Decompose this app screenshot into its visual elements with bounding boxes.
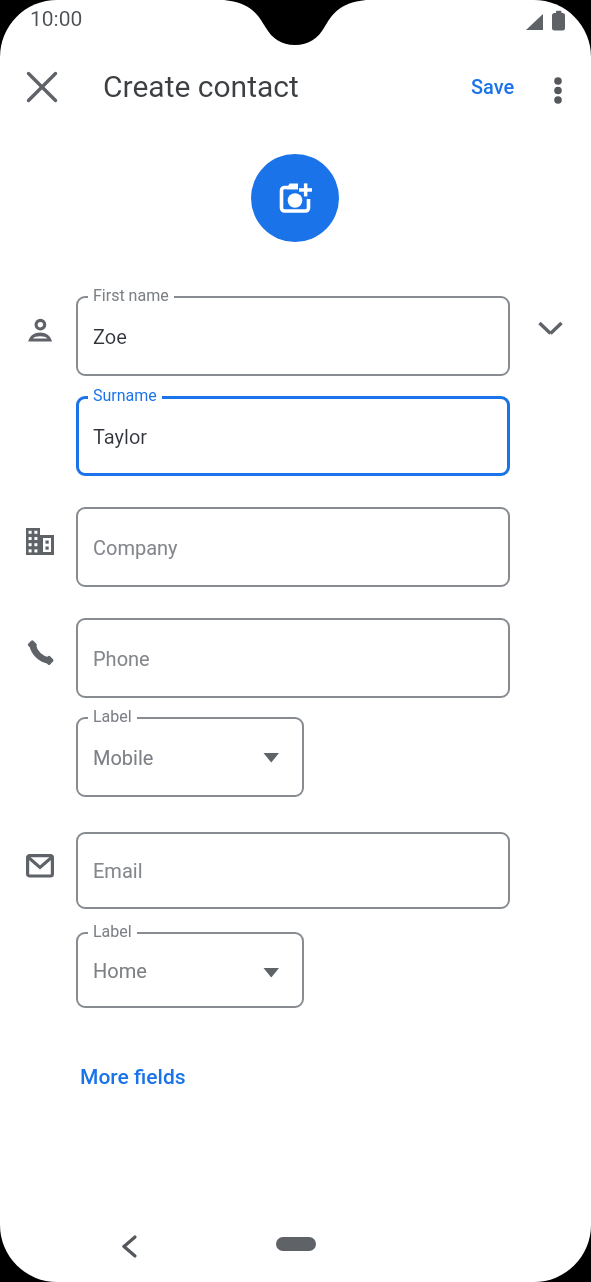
staticText: Company — [93, 536, 178, 559]
button[interactable] — [108, 1230, 148, 1264]
button[interactable] — [76, 296, 510, 376]
button[interactable] — [76, 396, 510, 476]
staticText: Home — [93, 959, 147, 982]
button[interactable] — [76, 507, 510, 587]
staticText: Label — [93, 707, 132, 726]
staticText: Mobile — [93, 746, 154, 769]
button[interactable] — [251, 154, 339, 242]
button[interactable] — [22, 66, 62, 106]
staticText: Label — [93, 922, 132, 941]
button[interactable]: More fields — [80, 1060, 200, 1094]
staticText: Save — [471, 75, 515, 98]
staticText: Surname — [93, 386, 157, 405]
button[interactable]: Save — [455, 56, 531, 116]
button[interactable] — [76, 618, 510, 698]
staticText: Taylor — [93, 425, 148, 448]
staticText: 10:00 — [30, 7, 83, 32]
button[interactable] — [76, 717, 304, 797]
staticText: Email — [93, 859, 143, 882]
button[interactable] — [76, 832, 510, 909]
button[interactable] — [276, 1237, 316, 1251]
button[interactable] — [76, 932, 304, 1008]
staticText: Zoe — [93, 325, 127, 348]
staticText: Create contact — [103, 69, 299, 104]
staticText: More fields — [80, 1065, 186, 1090]
staticText: Phone — [93, 647, 150, 670]
staticText: First name — [93, 286, 169, 305]
button[interactable] — [540, 66, 578, 106]
button[interactable] — [530, 308, 574, 348]
